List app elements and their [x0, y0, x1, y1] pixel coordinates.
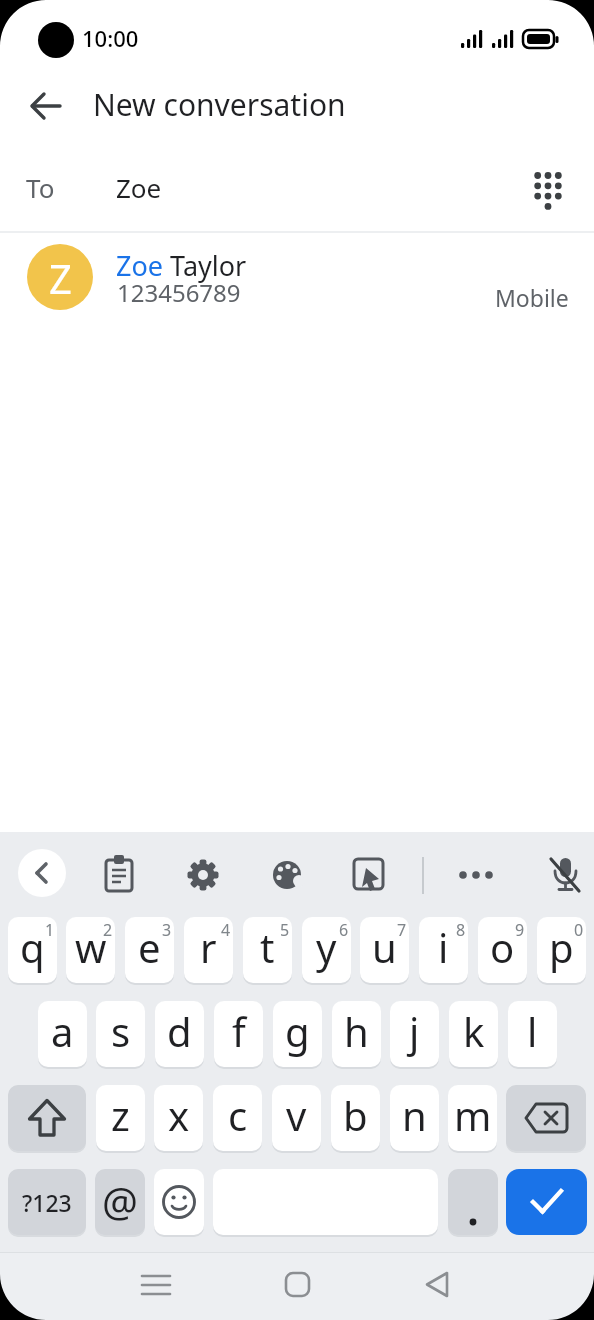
button[interactable]: y [302, 917, 351, 983]
button[interactable] [154, 1169, 204, 1235]
button[interactable] [506, 1169, 587, 1235]
button[interactable]: w [66, 917, 115, 983]
staticText: 3 [162, 919, 172, 941]
button[interactable]: z [96, 1085, 145, 1151]
button[interactable] [18, 849, 66, 897]
staticText: e [138, 920, 161, 974]
button[interactable]: ?123 [8, 1169, 86, 1235]
staticText: g [285, 1004, 310, 1058]
staticText: l [527, 1004, 538, 1058]
staticText: Zoe [116, 170, 162, 205]
staticText: h [344, 1004, 369, 1058]
button[interactable] [22, 82, 70, 130]
button[interactable]: p [537, 917, 586, 983]
staticText: 123456789 [117, 276, 241, 309]
staticText: Z [49, 251, 72, 305]
button[interactable] [179, 851, 227, 899]
button[interactable] [506, 1085, 586, 1151]
staticText: 5 [280, 919, 290, 941]
staticText: 4 [221, 919, 231, 941]
staticText: d [167, 1004, 192, 1058]
staticText: p [549, 920, 574, 974]
button[interactable]: u [360, 917, 409, 983]
button[interactable] [95, 851, 143, 899]
staticText: 6 [339, 919, 349, 941]
staticText: n [402, 1088, 427, 1142]
button[interactable]: o [478, 917, 527, 983]
button[interactable]: m [448, 1085, 497, 1151]
button[interactable]: b [331, 1085, 380, 1151]
staticText: f [232, 1004, 246, 1058]
staticText: j [409, 1004, 420, 1058]
button[interactable]: f [214, 1001, 263, 1067]
staticText: s [111, 1004, 131, 1058]
staticText: v [286, 1088, 307, 1142]
staticText: r [200, 920, 217, 974]
button[interactable]: i [419, 917, 468, 983]
button[interactable]: d [155, 1001, 204, 1067]
button[interactable]: t [243, 917, 292, 983]
button[interactable] [263, 851, 311, 899]
staticText: u [372, 920, 397, 974]
staticText: t [260, 920, 275, 974]
staticText: o [490, 920, 515, 974]
button[interactable]: l [508, 1001, 557, 1067]
staticText: New conversation [93, 84, 346, 125]
button[interactable]: e [125, 917, 174, 983]
button[interactable]: q [8, 917, 57, 983]
staticText: 2 [103, 919, 113, 941]
staticText: To [26, 170, 55, 205]
staticText: c [228, 1088, 248, 1142]
button[interactable]: v [272, 1085, 321, 1151]
staticText: b [343, 1088, 368, 1142]
staticText: k [463, 1004, 485, 1058]
staticText: 7 [397, 919, 407, 941]
button[interactable]: n [390, 1085, 439, 1151]
button[interactable] [448, 1169, 498, 1235]
staticText: 10:00 [82, 23, 139, 53]
staticText: m [454, 1088, 492, 1142]
button[interactable]: s [96, 1001, 145, 1067]
button[interactable] [452, 851, 500, 899]
staticText: ?123 [22, 1187, 72, 1218]
button[interactable] [541, 851, 589, 899]
button[interactable] [132, 1261, 180, 1309]
staticText: a [51, 1004, 74, 1058]
button[interactable] [414, 1261, 462, 1309]
staticText: x [168, 1088, 190, 1142]
button[interactable]: x [154, 1085, 203, 1151]
staticText: w [75, 920, 107, 974]
button[interactable]: Z [0, 233, 594, 323]
staticText: @ [102, 1174, 138, 1228]
button[interactable]: c [213, 1085, 262, 1151]
button[interactable]: g [273, 1001, 322, 1067]
staticText: 0 [574, 919, 584, 941]
staticText: 8 [456, 919, 466, 941]
staticText: Mobile [495, 282, 569, 313]
button[interactable]: h [332, 1001, 381, 1067]
button[interactable] [346, 851, 394, 899]
staticText: y [316, 920, 337, 974]
button[interactable]: j [390, 1001, 439, 1067]
staticText: z [111, 1088, 130, 1142]
button[interactable] [524, 166, 572, 214]
button[interactable]: r [184, 917, 233, 983]
staticText: q [20, 920, 45, 974]
button[interactable]: k [449, 1001, 498, 1067]
button[interactable]: a [38, 1001, 87, 1067]
staticText: i [438, 920, 449, 974]
button[interactable]: @ [95, 1169, 145, 1235]
staticText: 1 [45, 919, 55, 941]
staticText: 9 [515, 919, 525, 941]
staticText: Zoe Taylor [116, 247, 247, 284]
button[interactable] [273, 1261, 321, 1309]
button[interactable] [8, 1085, 86, 1151]
